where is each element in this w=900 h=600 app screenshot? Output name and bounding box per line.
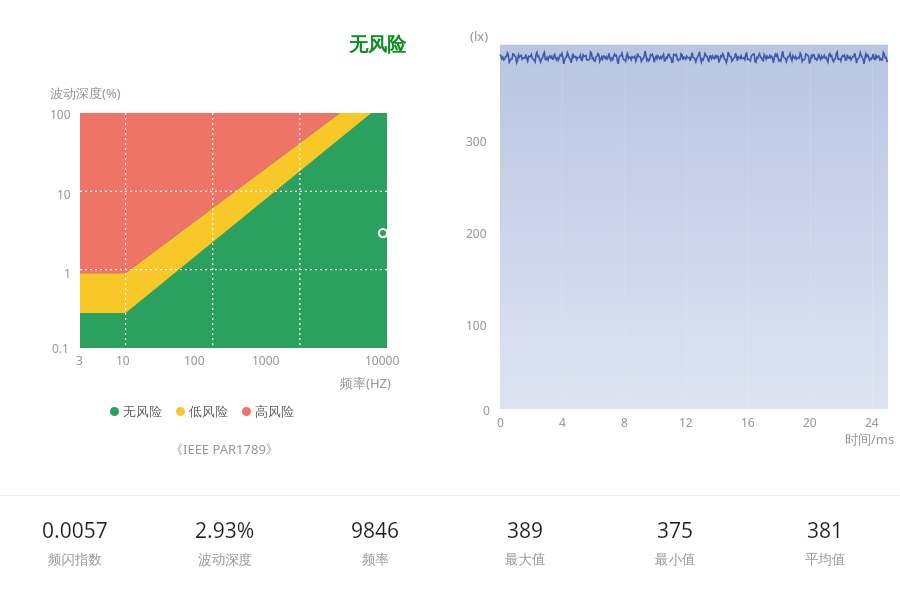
- staticText: 波动深度(%): [50, 84, 121, 102]
- staticText: 频率: [362, 551, 389, 568]
- staticText: 波动深度: [198, 551, 252, 568]
- button[interactable]: 389: [450, 512, 600, 572]
- staticText: 24: [865, 414, 879, 430]
- staticText: 高风险: [255, 403, 294, 419]
- staticText: 381: [807, 516, 844, 545]
- staticText: 1000: [252, 352, 280, 368]
- staticText: 时间/ms: [845, 430, 895, 448]
- staticText: 频闪指数: [48, 551, 102, 568]
- staticText: 低风险: [189, 403, 228, 419]
- staticText: 300: [466, 133, 487, 149]
- staticText: 频率(HZ): [340, 374, 391, 392]
- staticText: 0: [483, 402, 490, 418]
- staticText: 《IEEE PAR1789》: [170, 440, 279, 458]
- button[interactable]: 9846: [300, 512, 450, 572]
- staticText: 9846: [351, 516, 400, 545]
- staticText: (lx): [470, 27, 489, 45]
- staticText: 100: [50, 106, 71, 122]
- staticText: 平均值: [805, 551, 846, 568]
- staticText: 20: [803, 414, 817, 430]
- staticText: 0.0057: [42, 516, 108, 545]
- staticText: 10000: [365, 352, 400, 368]
- staticText: 无风险: [349, 33, 406, 57]
- staticText: 0.1: [52, 340, 69, 356]
- button[interactable]: 2.93%: [150, 512, 300, 572]
- staticText: 1: [64, 265, 71, 281]
- staticText: 375: [657, 516, 694, 545]
- staticText: 8: [621, 414, 628, 430]
- staticText: 389: [507, 516, 544, 545]
- staticText: 100: [466, 317, 487, 333]
- button[interactable]: 无风险: [110, 403, 294, 419]
- button[interactable]: 0.0057: [0, 512, 150, 572]
- staticText: 3: [76, 352, 83, 368]
- staticText: 4: [559, 414, 566, 430]
- staticText: 10: [57, 186, 71, 202]
- button[interactable]: 381: [750, 512, 900, 572]
- button[interactable]: 375: [600, 512, 750, 572]
- staticText: 10: [116, 352, 130, 368]
- staticText: 16: [741, 414, 755, 430]
- staticText: 最小值: [655, 551, 696, 568]
- staticText: 2.93%: [195, 516, 255, 545]
- staticText: 最大值: [505, 551, 546, 568]
- staticText: 100: [184, 352, 205, 368]
- staticText: 200: [466, 225, 487, 241]
- staticText: 12: [679, 414, 693, 430]
- staticText: 无风险: [123, 403, 162, 419]
- staticText: 0: [497, 414, 504, 430]
